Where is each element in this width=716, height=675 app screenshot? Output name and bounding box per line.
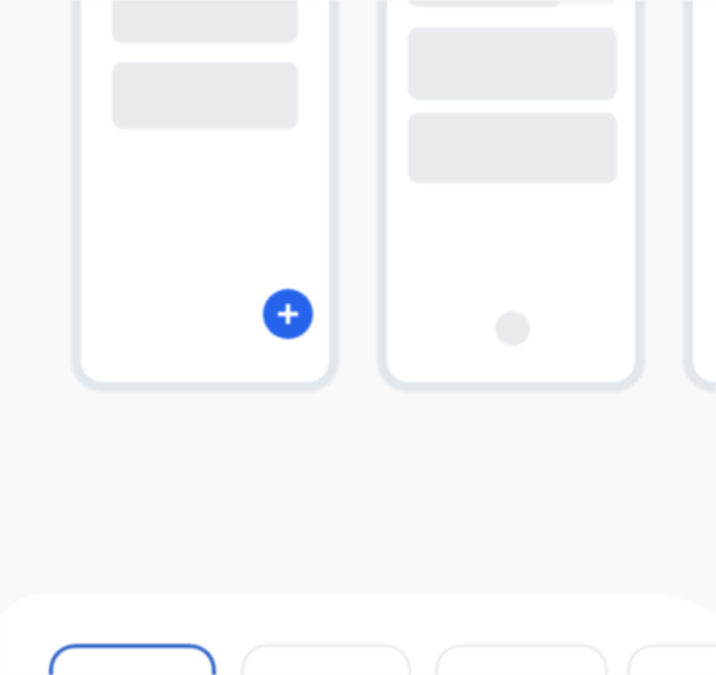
button[interactable]: Add bbox=[263, 289, 313, 339]
button[interactable] bbox=[378, 0, 644, 391]
button[interactable] bbox=[49, 644, 216, 675]
button[interactable] bbox=[627, 644, 716, 675]
button[interactable] bbox=[435, 644, 608, 675]
button[interactable]: Add bbox=[72, 0, 338, 391]
button[interactable] bbox=[241, 644, 411, 675]
button[interactable] bbox=[684, 0, 716, 391]
